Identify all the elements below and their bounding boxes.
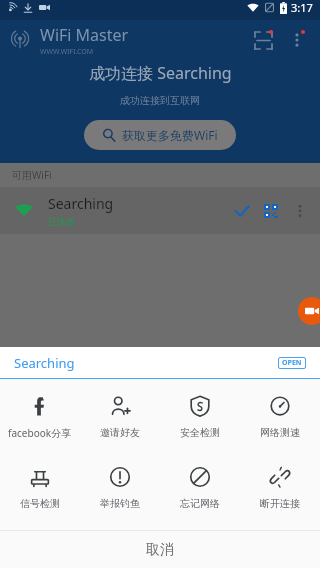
button[interactable]: 断开连接 [240,464,320,512]
staticText: 信号检测 [20,497,60,510]
staticText: 邀请好友 [100,426,140,439]
button[interactable]: More options [280,23,314,57]
staticText: WiFi Master [40,24,129,46]
button[interactable]: 忘记网络 [160,464,240,512]
button[interactable]: 取消 [0,531,320,568]
staticText: facebook分享 [8,426,72,440]
staticText: OPEN [282,358,302,368]
staticText: 已连接 [48,216,75,227]
staticText: 忘记网络 [180,497,220,510]
staticText: WWW.WIFI.COM [40,47,94,57]
staticText: 成功连接到互联网 [120,94,200,107]
staticText: 举报钓鱼 [100,497,140,510]
staticText: 取消 [146,541,174,559]
staticText: 安全检测 [180,426,220,439]
staticText: 3:17 [291,0,313,15]
staticText: 获取更多免费WiFi [122,127,218,143]
staticText: 成功连接 Searching [89,62,232,84]
button[interactable]: 安全检测 [160,393,240,441]
button[interactable]: Scan QR code [246,23,280,57]
button[interactable]: 邀请好友 [80,393,160,441]
button[interactable]: 举报钓鱼 [80,464,160,512]
staticText: 断开连接 [260,497,300,510]
button[interactable]: 信号检测 [0,464,80,512]
staticText: 可用WiFi [12,168,52,182]
button[interactable]: Network options [288,199,312,223]
staticText: Searching [14,354,75,372]
button[interactable]: Video [298,297,320,325]
button[interactable]: Searching [0,187,320,234]
staticText: 网络测速 [260,426,300,439]
staticText: Searching [48,194,114,213]
button[interactable]: 获取更多免费WiFi [84,120,236,150]
button[interactable]: Share via QR code [260,200,282,222]
button[interactable]: Searching [0,347,320,378]
button[interactable]: facebook分享 [0,393,80,442]
button[interactable]: 网络测速 [240,393,320,441]
